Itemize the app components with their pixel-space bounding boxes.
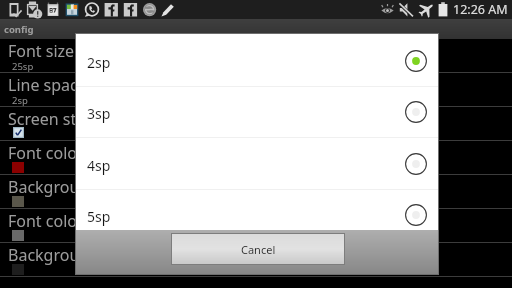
staticText: Font color night — [8, 210, 128, 232]
button[interactable]: 2sp — [76, 35, 438, 87]
button[interactable]: Screen stays on — [0, 107, 512, 141]
staticText: 3sp — [87, 104, 111, 123]
staticText: 5sp — [87, 207, 111, 226]
staticText: Background color day — [8, 176, 173, 198]
button[interactable]: Background color day — [0, 175, 512, 209]
button[interactable]: Font color night — [0, 209, 512, 243]
staticText: config — [4, 23, 34, 36]
button[interactable]: 4sp — [76, 138, 438, 190]
staticText: 12:26 AM — [453, 1, 508, 18]
staticText: Font size — [8, 40, 75, 62]
staticText: Screen stays on — [8, 108, 125, 130]
staticText: 4sp — [87, 156, 111, 175]
staticText: Font color day — [8, 142, 115, 164]
staticText: 25sp — [12, 60, 34, 73]
button[interactable]: 3sp — [76, 86, 438, 138]
staticText: Background color night — [8, 244, 185, 266]
staticText: 2sp — [87, 53, 111, 72]
button[interactable]: Font size — [0, 39, 512, 73]
staticText: 2sp — [12, 94, 28, 107]
button[interactable]: Background color night — [0, 243, 512, 277]
button[interactable]: Cancel — [172, 234, 344, 264]
staticText: Cancel — [241, 242, 276, 257]
staticText: Line spacing — [8, 74, 102, 96]
button[interactable]: Font color day — [0, 141, 512, 175]
button[interactable]: 5sp — [76, 189, 438, 230]
button[interactable]: Line spacing — [0, 73, 512, 107]
